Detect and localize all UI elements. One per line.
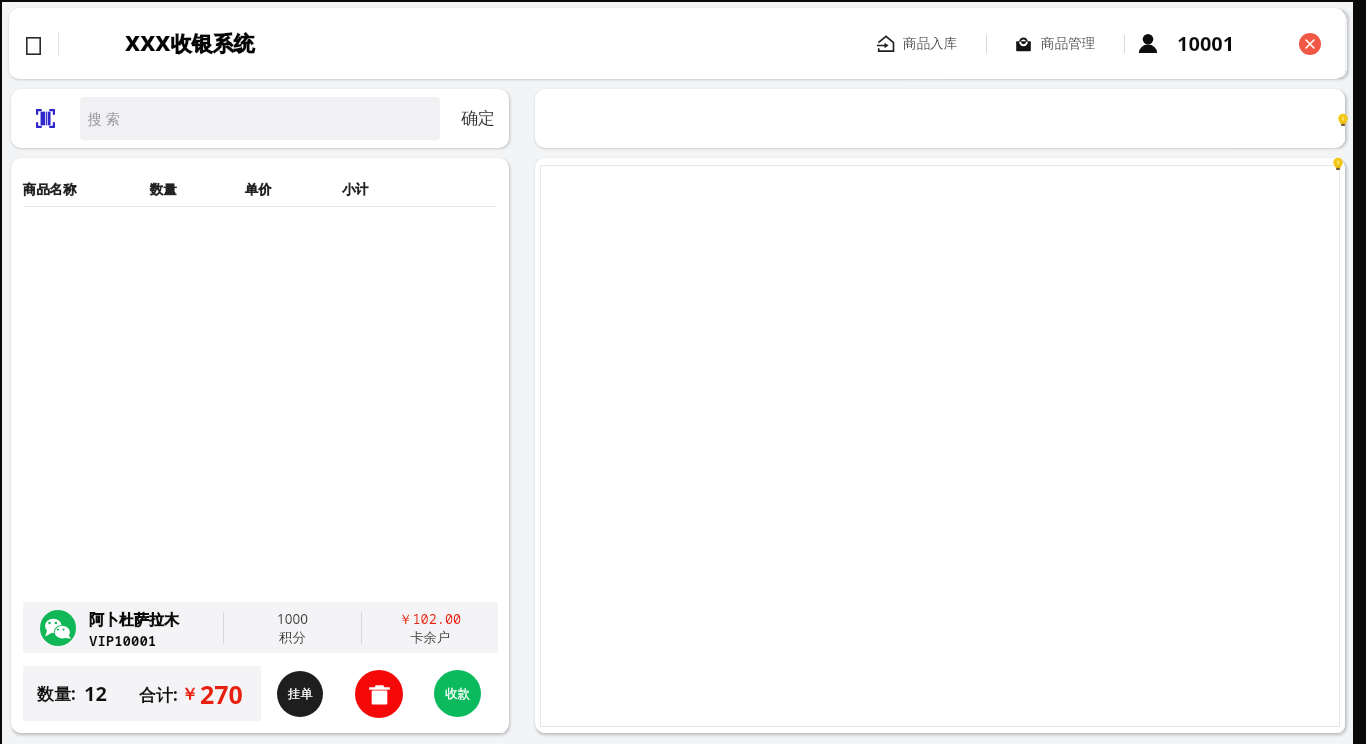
- staticText: 12: [84, 680, 107, 707]
- staticText: 收款: [445, 686, 470, 702]
- button[interactable]: 收款: [434, 670, 481, 717]
- button[interactable]: 搜 索: [80, 97, 440, 140]
- staticText: 商品入库: [903, 35, 957, 52]
- other: Delete: [368, 683, 391, 706]
- staticText: VIP10001: [89, 631, 157, 650]
- button[interactable]: Delete: [355, 670, 403, 718]
- staticText: 挂单: [288, 686, 313, 702]
- button[interactable]: 确定: [452, 89, 509, 148]
- staticText: 数量:: [37, 682, 76, 705]
- staticText: XXX收银系统: [125, 29, 255, 58]
- button[interactable]: Customer display panel: [535, 89, 1345, 148]
- staticText: 270: [200, 677, 243, 711]
- button[interactable]: 挂单: [277, 671, 323, 717]
- staticText: 阿卜杜萨拉木: [89, 611, 179, 630]
- staticText: 卡余户: [410, 629, 451, 646]
- staticText: 小计: [342, 181, 369, 198]
- staticText: 积分: [279, 629, 306, 646]
- staticText: 合计:: [139, 683, 178, 706]
- button[interactable]: Scan barcode: [11, 89, 80, 148]
- staticText: ￥: [181, 684, 198, 705]
- button[interactable]: Menu: [13, 26, 53, 66]
- staticText: 商品名称: [23, 181, 150, 198]
- button[interactable]: 阿卜杜萨拉木: [23, 602, 498, 653]
- button[interactable]: 商品管理: [1012, 27, 1098, 60]
- button[interactable]: 商品入库: [874, 27, 960, 60]
- staticText: 单价: [245, 181, 342, 198]
- staticText: ￥102.00: [399, 610, 462, 628]
- button[interactable]: Close: [1299, 33, 1321, 55]
- staticText: 确定: [461, 108, 495, 129]
- staticText: 数量: [150, 181, 245, 198]
- staticText: 搜 索: [88, 109, 120, 128]
- staticText: 1000: [277, 610, 308, 628]
- staticText: 商品管理: [1041, 35, 1095, 52]
- staticText: 10001: [1177, 30, 1235, 57]
- button[interactable]: 10001: [1132, 22, 1239, 65]
